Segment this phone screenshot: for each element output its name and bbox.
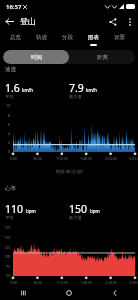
staticText: 6 <box>8 122 11 127</box>
staticText: 175 <box>4 225 11 230</box>
staticText: 距离 <box>97 54 108 61</box>
staticText: 总览 <box>10 34 21 41</box>
staticText: 2:24:00 <box>105 156 117 161</box>
staticText: 分段 <box>62 34 73 41</box>
button[interactable]: More options <box>122 14 138 30</box>
staticText: 36:00 <box>33 156 42 161</box>
staticText: 登山 <box>20 16 36 26</box>
button[interactable]: Back <box>0 12 19 31</box>
staticText: 3:00:00 <box>129 156 138 161</box>
button[interactable]: 轨迹 <box>28 33 54 47</box>
staticText: 100 <box>4 254 11 259</box>
staticText: 8 <box>8 113 11 118</box>
staticText: 设置 <box>114 34 125 41</box>
staticText: 0:00 <box>10 280 17 285</box>
staticText: 速度 <box>5 66 16 73</box>
staticText: 图表 <box>88 34 99 41</box>
button[interactable]: 总览 <box>2 33 28 47</box>
staticText: 3:00:00 <box>129 280 138 285</box>
button[interactable]: 设置 <box>106 33 132 47</box>
staticText: 1:48:00 <box>80 280 92 285</box>
staticText: 0 <box>8 149 11 154</box>
staticText: km/h <box>22 87 34 93</box>
button[interactable]: Back <box>92 286 138 300</box>
staticText: bpm <box>26 208 36 214</box>
staticText: 50 <box>6 273 11 278</box>
staticText: 36:00 <box>33 280 42 285</box>
button[interactable]: 图表 <box>80 33 106 47</box>
staticText: 10 <box>6 103 11 108</box>
staticText: 时间 (时:分:秒) <box>56 169 83 175</box>
button[interactable]: 时间 <box>3 50 69 64</box>
staticText: 16:57 <box>6 3 22 11</box>
staticText: 1:12:00 <box>56 280 68 285</box>
staticText: 1:48:00 <box>80 156 92 161</box>
staticText: 平均 <box>5 94 14 99</box>
button[interactable]: Share <box>103 12 122 31</box>
staticText: 2 <box>8 140 11 145</box>
staticText: 4 <box>8 131 11 136</box>
staticText: 0:00 <box>10 156 17 161</box>
staticText: 平均 <box>5 215 14 220</box>
staticText: 时间 <box>31 54 42 61</box>
staticText: km/h <box>86 87 98 93</box>
button[interactable]: Home <box>46 286 92 300</box>
staticText: 110 <box>5 202 24 216</box>
staticText: 轨迹 <box>36 34 47 41</box>
staticText: 150 <box>4 235 11 240</box>
staticText: 1:12:00 <box>56 156 68 161</box>
staticText: 1.6 <box>5 81 20 95</box>
staticText: 最大值 <box>69 94 82 99</box>
button[interactable]: Recents <box>0 286 46 300</box>
button[interactable]: 距离 <box>69 50 135 64</box>
staticText: 心率 <box>5 185 16 192</box>
staticText: 75 <box>6 264 11 269</box>
staticText: 最大值 <box>69 215 82 220</box>
staticText: 125 <box>4 245 11 250</box>
staticText: 7.9 <box>69 81 84 95</box>
staticText: 2:24:00 <box>105 280 117 285</box>
staticText: 150 <box>69 202 88 216</box>
button[interactable]: 分段 <box>54 33 80 47</box>
staticText: bpm <box>90 208 100 214</box>
